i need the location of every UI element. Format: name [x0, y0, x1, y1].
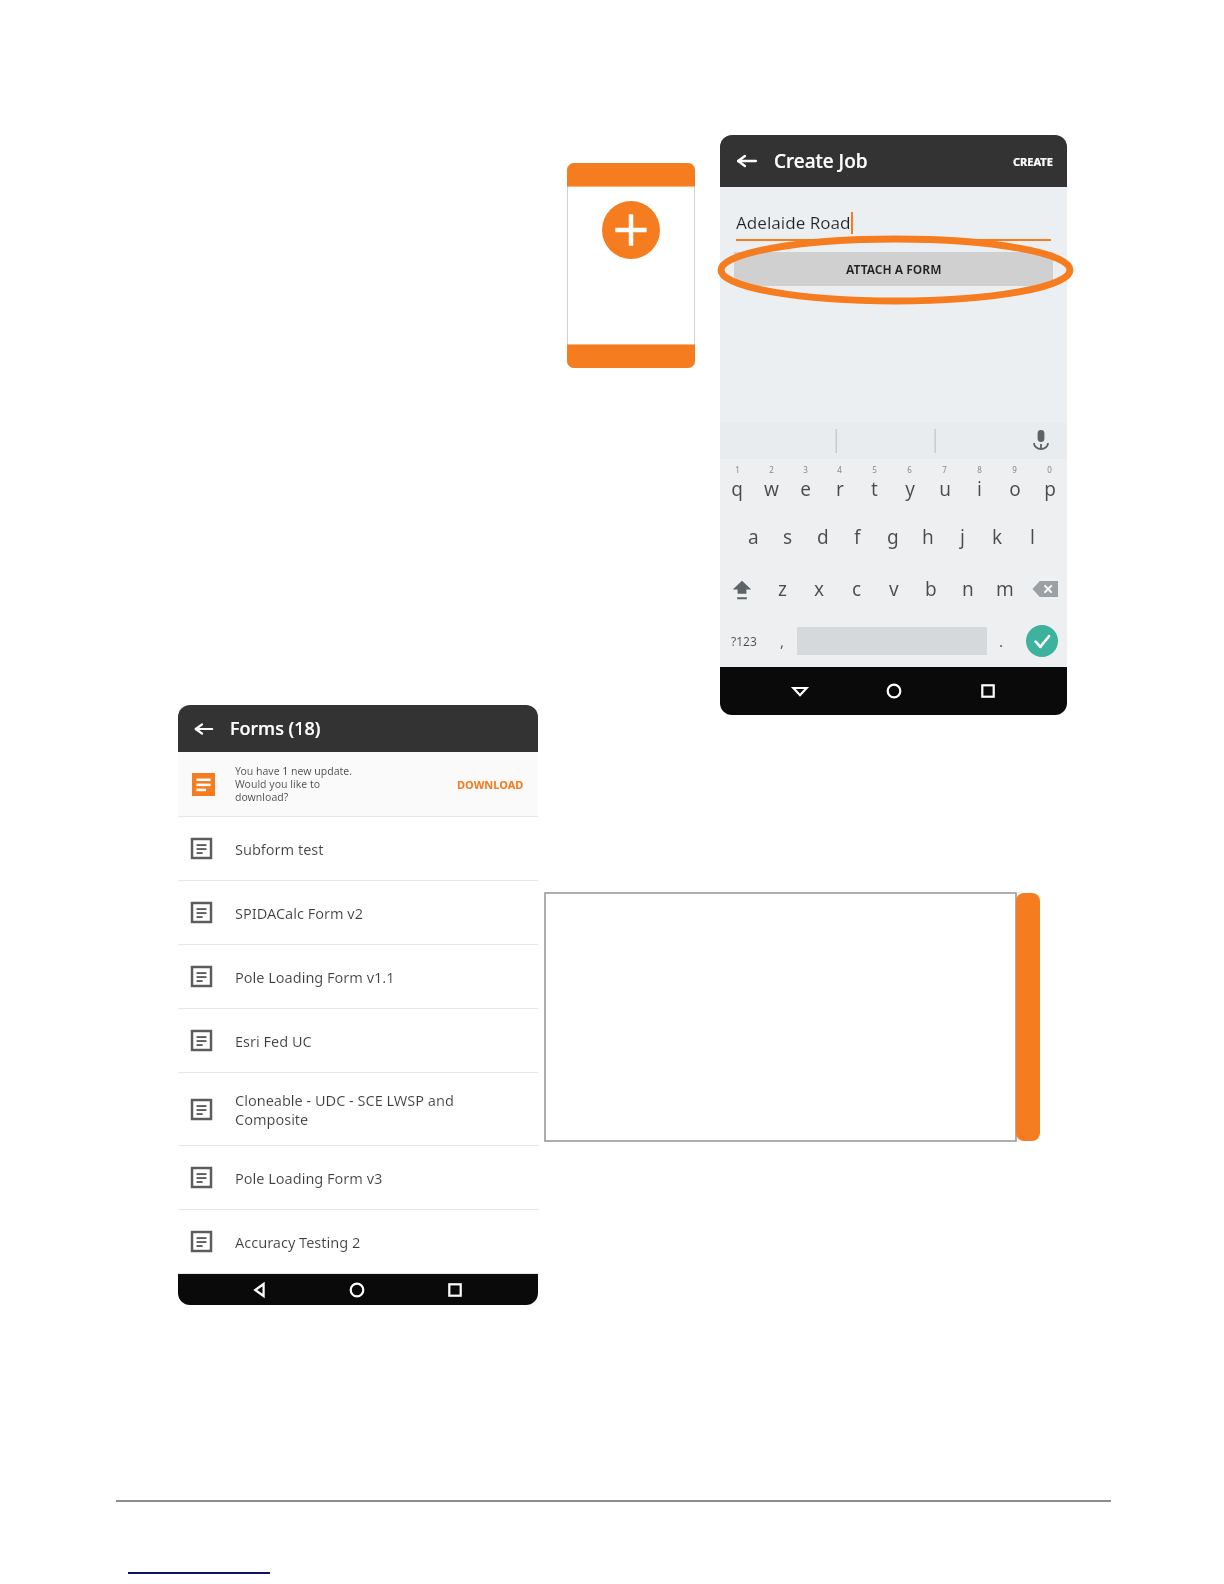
staticText: SPIDACalc Form v2: [235, 903, 363, 923]
staticText: e: [800, 476, 811, 502]
button[interactable]: g: [875, 511, 910, 563]
button[interactable]: 7: [927, 459, 962, 511]
staticText: v: [889, 576, 899, 602]
button[interactable]: Esri Fed UC: [178, 1009, 538, 1072]
staticText: k: [992, 524, 1003, 550]
button[interactable]: f: [840, 511, 875, 563]
button[interactable]: .: [987, 615, 1016, 667]
staticText: s: [783, 524, 793, 550]
staticText: h: [922, 524, 934, 550]
button[interactable]: ,: [768, 615, 797, 667]
staticText: z: [778, 576, 787, 602]
button[interactable]: 6: [892, 459, 927, 511]
button[interactable]: k: [980, 511, 1015, 563]
button[interactable]: Back: [245, 1275, 275, 1305]
staticText: ,: [780, 631, 785, 651]
button[interactable]: m: [986, 563, 1023, 615]
staticText: 2: [769, 464, 774, 475]
staticText: w: [764, 476, 779, 502]
button[interactable]: d: [805, 511, 840, 563]
staticText: Subform test: [235, 839, 324, 859]
staticText: o: [1009, 476, 1021, 502]
button[interactable]: You have 1 new update. Would you like to…: [178, 752, 538, 816]
button[interactable]: 4: [822, 459, 857, 511]
button[interactable]: n: [949, 563, 986, 615]
button[interactable]: Add: [602, 201, 660, 259]
button[interactable]: l: [1015, 511, 1050, 563]
staticText: b: [925, 576, 937, 602]
staticText: CREATE: [1013, 154, 1053, 169]
button[interactable]: Cloneable - UDC - SCE LWSP and Composite: [178, 1073, 538, 1145]
button[interactable]: Back: [192, 717, 216, 741]
button[interactable]: z: [764, 563, 801, 615]
button[interactable]: Shift: [720, 563, 764, 615]
button[interactable]: c: [838, 563, 875, 615]
button[interactable]: Pole Loading Form v3: [178, 1146, 538, 1209]
button[interactable]: Accuracy Testing 2: [178, 1210, 538, 1273]
button[interactable]: CREATE: [1011, 152, 1055, 171]
button[interactable]: Pole Loading Form v1.1: [178, 945, 538, 1008]
staticText: y: [905, 476, 915, 502]
button[interactable]: ?123: [720, 615, 768, 667]
button[interactable]: 8: [962, 459, 997, 511]
staticText: 5: [872, 464, 877, 475]
button[interactable]: Subform test: [178, 817, 538, 880]
staticText: Pole Loading Form v1.1: [235, 967, 395, 987]
staticText: Accuracy Testing 2: [235, 1232, 361, 1252]
staticText: 1: [735, 464, 740, 475]
button[interactable]: Home: [342, 1275, 372, 1305]
staticText: m: [996, 576, 1014, 602]
staticText: r: [836, 476, 844, 502]
button[interactable]: Backspace: [1023, 563, 1067, 615]
staticText: Esri Fed UC: [235, 1031, 312, 1051]
staticText: c: [852, 576, 862, 602]
button[interactable]: b: [912, 563, 949, 615]
staticText: f: [854, 524, 861, 550]
staticText: p: [1044, 476, 1056, 502]
button[interactable]: 2: [754, 459, 788, 511]
button[interactable]: 1: [720, 459, 754, 511]
staticText: l: [1030, 524, 1035, 550]
button[interactable]: 5: [857, 459, 892, 511]
button[interactable]: Recents: [973, 676, 1003, 706]
button[interactable]: s: [770, 511, 805, 563]
button[interactable]: 9: [997, 459, 1032, 511]
button[interactable]: j: [945, 511, 980, 563]
button[interactable]: Back: [734, 148, 760, 174]
button[interactable]: Back: [785, 676, 815, 706]
staticText: ATTACH A FORM: [846, 261, 942, 277]
staticText: Pole Loading Form v3: [235, 1168, 383, 1188]
staticText: Forms (18): [230, 716, 321, 741]
button[interactable]: Recents: [440, 1275, 470, 1305]
staticText: x: [814, 576, 825, 602]
staticText: q: [731, 476, 743, 502]
staticText: 4: [837, 464, 842, 475]
staticText: You have 1 new update. Would you like to…: [235, 764, 353, 804]
button[interactable]: Enter: [1026, 625, 1058, 657]
button[interactable]: ATTACH A FORM: [734, 252, 1053, 286]
staticText: Create Job: [774, 148, 868, 174]
button[interactable]: v: [875, 563, 912, 615]
staticText: Adelaide Road: [736, 211, 851, 234]
button[interactable]: 3: [788, 459, 822, 511]
button[interactable]: a: [736, 511, 770, 563]
staticText: i: [977, 476, 982, 502]
staticText: a: [748, 524, 759, 550]
staticText: u: [939, 476, 951, 502]
staticText: t: [871, 476, 878, 502]
staticText: 3: [803, 464, 808, 475]
button[interactable]: x: [801, 563, 838, 615]
staticText: 9: [1012, 464, 1017, 475]
staticText: 8: [977, 464, 982, 475]
button[interactable]: Home: [879, 676, 909, 706]
staticText: d: [817, 524, 829, 550]
button[interactable]: h: [910, 511, 945, 563]
staticText: 6: [907, 464, 912, 475]
staticText: 0: [1047, 464, 1052, 475]
staticText: DOWNLOAD: [457, 777, 524, 792]
button[interactable]: SPIDACalc Form v2: [178, 881, 538, 944]
staticText: 7: [942, 464, 947, 475]
staticText: .: [999, 631, 1004, 651]
button[interactable]: 0: [1032, 459, 1067, 511]
